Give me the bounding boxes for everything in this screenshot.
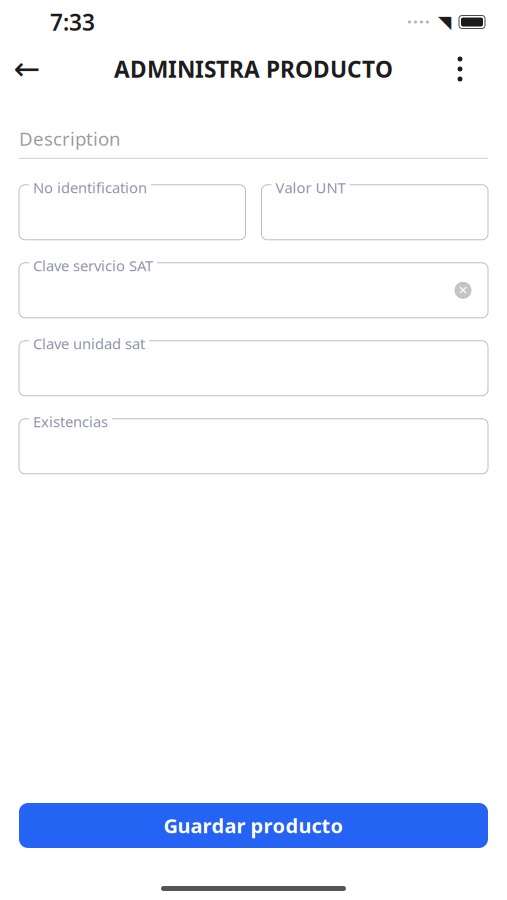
staticText: Clave servicio SAT [33, 256, 153, 275]
staticText: ADMINISTRA PRODUCTO [114, 54, 393, 84]
button[interactable]: Guardar producto [19, 803, 488, 848]
staticText: ← [13, 51, 40, 87]
button[interactable]: Clear Clave servicio SAT [446, 273, 480, 307]
staticText: Clave unidad sat [33, 334, 145, 353]
staticText: Valor UNT [275, 178, 345, 197]
staticText: No identification [33, 178, 147, 197]
staticText: Existencias [33, 412, 108, 431]
staticText: Guardar producto [163, 812, 343, 839]
button[interactable]: Back [0, 44, 54, 94]
button[interactable]: More options [435, 44, 485, 94]
staticText: ◥ [438, 12, 451, 32]
staticText: Description [19, 126, 121, 151]
staticText: ✕ [458, 283, 468, 297]
staticText: 7:33 [50, 7, 95, 37]
